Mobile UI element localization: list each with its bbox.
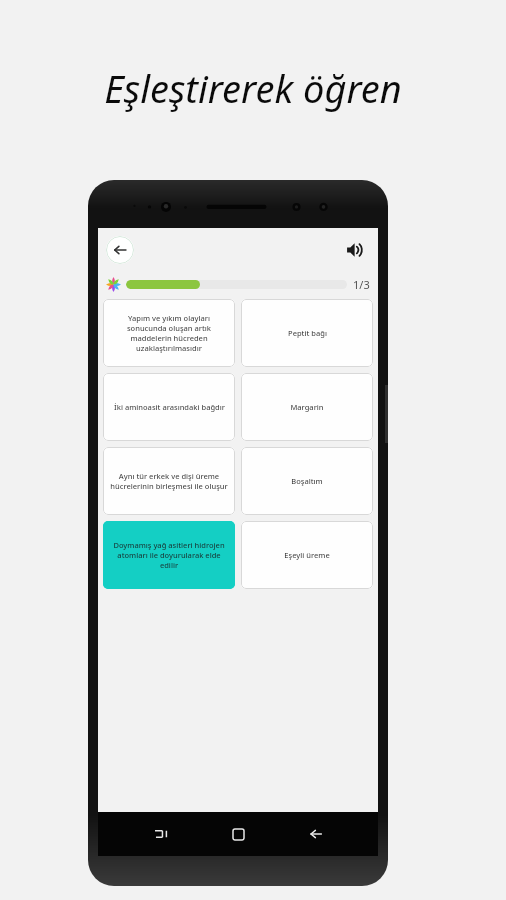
button[interactable]: Aynı tür erkek ve dişi üreme hücrelerini…	[103, 447, 235, 515]
button[interactable]: Recents	[146, 819, 176, 849]
staticText: 1/3	[353, 277, 370, 292]
staticText: İki aminoasit arasındaki bağdır	[114, 402, 225, 412]
button[interactable]: Back	[301, 819, 331, 849]
staticText: Peptit bağı	[288, 328, 327, 338]
staticText: Aynı tür erkek ve dişi üreme hücrelerini…	[110, 471, 228, 491]
button[interactable]: Margarin	[241, 373, 373, 441]
staticText: Eşleştirerek öğren	[104, 62, 402, 114]
staticText: Yapım ve yıkım olayları sonucunda oluşan…	[110, 313, 228, 353]
staticText: Doymamış yağ asitleri hidrojen atomları …	[110, 540, 228, 570]
button[interactable]: Back	[106, 236, 134, 264]
staticText: Margarin	[290, 402, 324, 412]
button[interactable]: Yapım ve yıkım olayları sonucunda oluşan…	[103, 299, 235, 367]
button[interactable]: Peptit bağı	[241, 299, 373, 367]
staticText: Eşeyli üreme	[284, 550, 330, 560]
button[interactable]: İki aminoasit arasındaki bağdır	[103, 373, 235, 441]
button[interactable]: Eşeyli üreme	[241, 521, 373, 589]
button[interactable]: Boşaltım	[241, 447, 373, 515]
button[interactable]: Sound	[342, 237, 368, 263]
button[interactable]: Doymamış yağ asitleri hidrojen atomları …	[103, 521, 235, 589]
staticText: Boşaltım	[291, 476, 323, 486]
button[interactable]: Home	[223, 819, 253, 849]
